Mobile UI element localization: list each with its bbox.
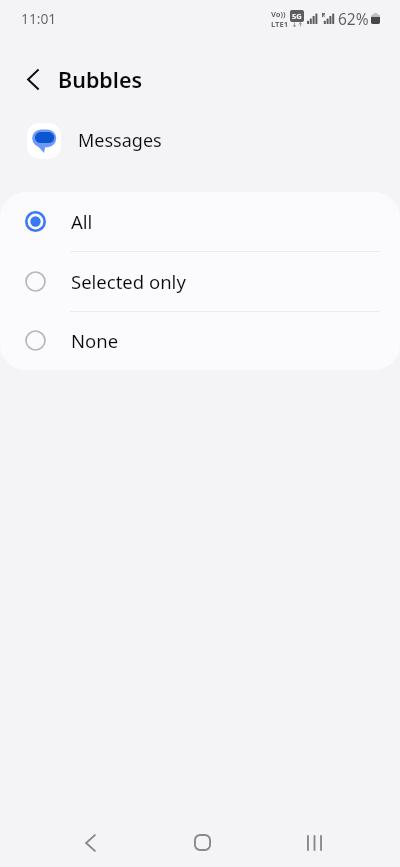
staticText: 5G bbox=[292, 11, 302, 21]
staticText: None bbox=[71, 328, 119, 353]
button[interactable]: Home bbox=[174, 818, 230, 867]
button[interactable]: None bbox=[0, 312, 400, 370]
button[interactable]: Recent apps bbox=[286, 818, 342, 867]
button[interactable]: Back bbox=[62, 818, 118, 867]
staticText: All bbox=[71, 209, 93, 234]
staticText: Messages bbox=[78, 128, 162, 153]
staticText: Bubbles bbox=[58, 65, 143, 94]
button[interactable]: Messages bbox=[0, 116, 400, 164]
staticText: 11:01 bbox=[21, 9, 57, 28]
staticText: Selected only bbox=[71, 269, 186, 294]
button[interactable]: Navigate up bbox=[13, 60, 52, 99]
staticText: 62% bbox=[338, 8, 369, 29]
button[interactable]: All bbox=[0, 192, 400, 252]
button[interactable]: Selected only bbox=[0, 252, 400, 312]
staticText: Vo)) bbox=[271, 9, 286, 19]
staticText: LTE1 bbox=[271, 19, 289, 29]
